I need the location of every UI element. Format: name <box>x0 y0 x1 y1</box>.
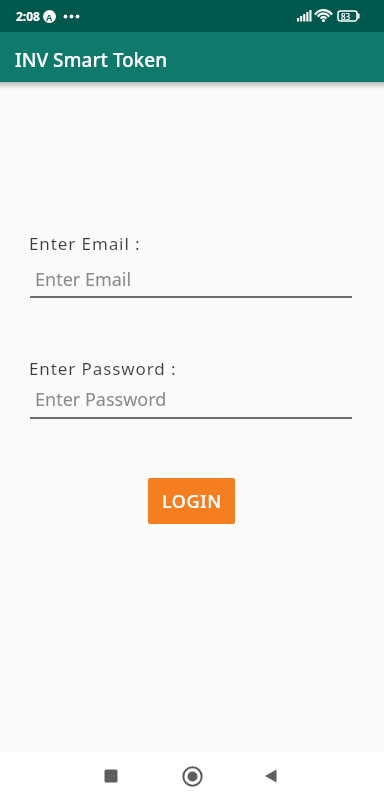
staticText: Enter Email <box>35 267 132 292</box>
staticText: LOGIN <box>162 489 222 514</box>
button[interactable] <box>168 752 216 800</box>
button[interactable]: Enter Email <box>30 263 352 298</box>
staticText: Enter Email : <box>29 232 141 255</box>
staticText: 2:08 <box>16 8 40 24</box>
staticText: A <box>46 11 53 23</box>
button[interactable]: Enter Password <box>30 383 352 419</box>
staticText: 83 <box>341 11 351 22</box>
button[interactable] <box>87 752 135 800</box>
staticText: INV Smart Token <box>15 47 168 73</box>
button[interactable] <box>247 752 295 800</box>
staticText: Enter Password : <box>29 357 177 380</box>
staticText: Enter Password <box>35 387 167 412</box>
button[interactable]: LOGIN <box>148 478 235 524</box>
